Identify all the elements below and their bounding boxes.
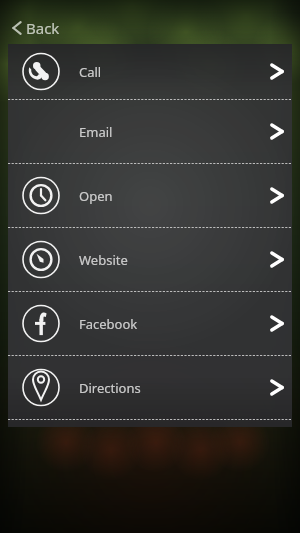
button[interactable]: Website xyxy=(8,228,292,291)
staticText: Website xyxy=(79,251,128,269)
staticText: Open xyxy=(79,187,113,205)
staticText: Facebook xyxy=(79,315,138,333)
staticText: Directions xyxy=(79,379,141,397)
button[interactable]: Open xyxy=(8,164,292,227)
button[interactable]: Call xyxy=(8,44,292,99)
button[interactable]: Back xyxy=(6,16,64,40)
staticText: Call xyxy=(79,63,102,81)
button[interactable]: Email xyxy=(8,100,292,163)
staticText: Email xyxy=(79,123,113,141)
button[interactable]: Directions xyxy=(8,356,292,419)
button[interactable]: Facebook xyxy=(8,292,292,355)
staticText: Back xyxy=(26,18,60,38)
